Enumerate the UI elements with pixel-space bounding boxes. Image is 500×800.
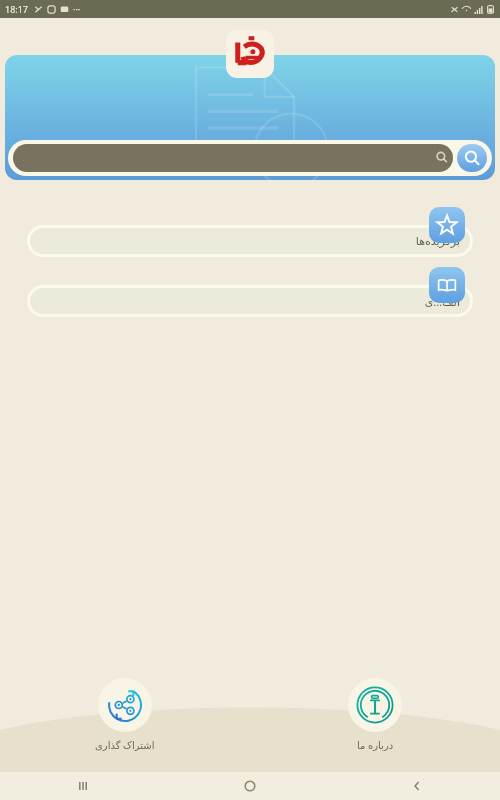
staticText: برگزیده‌ها [415,235,460,248]
button[interactable]: Search [457,144,487,172]
staticText: درباره ما [357,738,394,752]
button[interactable]: Home [166,772,333,800]
button[interactable]: Recents [0,772,166,800]
button[interactable]: Share [0,678,250,752]
button[interactable]: App logo [226,30,274,78]
staticText: 18:17 [5,3,29,15]
button[interactable]: Search field [13,144,453,172]
button[interactable]: برگزیده‌ها [429,207,465,243]
button[interactable]: الف...ی [30,288,470,314]
staticText: ··· [73,3,81,15]
button[interactable]: برگزیده‌ها [30,228,470,254]
button[interactable]: الف...ی [429,267,465,303]
button[interactable]: About us [250,678,500,752]
staticText: اشتراک گذاری [95,738,155,752]
staticText: الف...ی [424,294,460,309]
button[interactable]: Back [333,772,500,800]
